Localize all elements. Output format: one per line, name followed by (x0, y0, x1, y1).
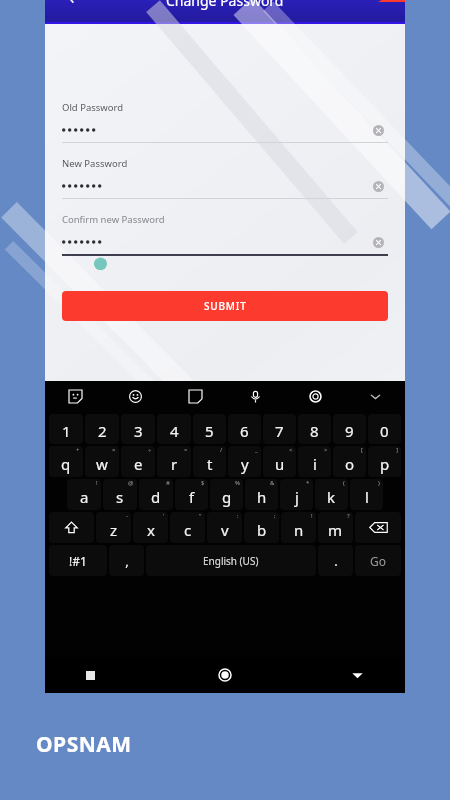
button[interactable]: : (207, 512, 242, 543)
staticText: y (241, 454, 249, 474)
staticText: i (313, 454, 317, 474)
button[interactable]: Home (165, 657, 285, 693)
staticText: ? (347, 512, 350, 520)
button[interactable]: ( (315, 479, 348, 510)
button[interactable]: $ (175, 479, 208, 510)
button[interactable]: ! (281, 512, 316, 543)
button[interactable]: !#1 (49, 545, 107, 576)
staticText: m (328, 520, 343, 540)
button[interactable]: Sticker (63, 384, 87, 408)
button[interactable]: 2 (85, 414, 119, 444)
button[interactable]: . (318, 545, 353, 576)
button[interactable]: + (49, 446, 83, 477)
button[interactable]: / (193, 446, 226, 477)
button[interactable]: New Password (45, 157, 405, 199)
button[interactable]: @ (103, 479, 137, 510)
button[interactable]: 3 (121, 414, 155, 444)
staticText: d (151, 487, 161, 507)
staticText: p (380, 454, 390, 474)
button[interactable]: Confirm new Password (45, 213, 405, 271)
staticText: q (61, 454, 71, 474)
button[interactable]: ! (67, 479, 101, 510)
button[interactable]: Old Password (45, 101, 405, 143)
button[interactable]: ? (318, 512, 353, 543)
button[interactable]: - (96, 512, 131, 543)
staticText: 1 (62, 421, 71, 441)
staticText: 2 (98, 421, 107, 441)
staticText: = (184, 446, 188, 454)
button[interactable]: Collapse keyboard (363, 384, 387, 408)
staticText: OPSNAM (36, 730, 132, 759)
staticText: " (199, 512, 202, 520)
button[interactable]: ' (133, 512, 168, 543)
button[interactable]: # (139, 479, 173, 510)
button[interactable]: " (170, 512, 205, 543)
staticText: ! (96, 479, 98, 487)
button[interactable]: = (157, 446, 191, 477)
staticText: × (112, 446, 116, 454)
button[interactable]: SUBMIT (62, 291, 388, 321)
button[interactable]: Emoji (123, 384, 147, 408)
button[interactable]: 1 (49, 414, 83, 444)
staticText: [ (361, 446, 363, 454)
button[interactable]: Recent apps (45, 657, 165, 693)
button[interactable]: % (210, 479, 243, 510)
button[interactable]: 9 (333, 414, 366, 444)
staticText: g (222, 487, 232, 507)
staticText: - (126, 512, 128, 520)
staticText: u (275, 454, 285, 474)
staticText: SUBMIT (204, 299, 247, 313)
staticText: * (306, 479, 310, 487)
button[interactable]: Settings (303, 384, 327, 408)
button[interactable]: ) (350, 479, 383, 510)
button[interactable]: Backspace (355, 512, 401, 543)
button[interactable]: English (US) (146, 545, 316, 576)
button[interactable]: Clear Confirm new Password (368, 233, 388, 251)
button[interactable]: 5 (193, 414, 226, 444)
button[interactable]: * (280, 479, 313, 510)
staticText: % (235, 479, 240, 487)
staticText: Change Password (166, 0, 284, 10)
button[interactable]: _ (228, 446, 261, 477)
button[interactable]: GIF (183, 384, 207, 408)
staticText: Go (370, 553, 386, 569)
staticText: v (221, 520, 229, 540)
button[interactable]: Voice input (243, 384, 267, 408)
staticText: b (257, 520, 267, 540)
button[interactable]: 7 (263, 414, 296, 444)
staticText: ' (163, 512, 165, 520)
staticText: New Password (62, 157, 128, 170)
staticText: @ (128, 479, 134, 487)
button[interactable]: ] (368, 446, 401, 477)
button[interactable]: > (298, 446, 331, 477)
button[interactable]: 4 (157, 414, 191, 444)
button[interactable]: Clear New Password (368, 177, 388, 195)
staticText: 3 (134, 421, 143, 441)
staticText: : (237, 512, 239, 520)
button[interactable]: [ (333, 446, 366, 477)
button[interactable]: Clear Old Password (368, 121, 388, 139)
button[interactable]: 8 (298, 414, 331, 444)
staticText: + (76, 446, 80, 454)
staticText: ( (343, 479, 345, 487)
button[interactable]: ; (244, 512, 279, 543)
button[interactable]: Hide keyboard (285, 657, 405, 693)
staticText: w (96, 454, 108, 474)
button[interactable]: < (263, 446, 296, 477)
button[interactable]: Go (355, 545, 401, 576)
button[interactable]: , (109, 545, 144, 576)
button[interactable]: Back (53, 0, 89, 8)
button[interactable]: × (85, 446, 119, 477)
staticText: k (327, 487, 336, 507)
staticText: c (184, 520, 192, 540)
staticText: # (166, 479, 170, 487)
button[interactable]: & (245, 479, 278, 510)
button[interactable]: ÷ (121, 446, 155, 477)
button[interactable]: 0 (368, 414, 401, 444)
button[interactable]: 6 (228, 414, 261, 444)
staticText: ; (274, 512, 276, 520)
staticText: e (134, 454, 143, 474)
staticText: x (147, 520, 155, 540)
button[interactable]: Shift (49, 512, 94, 543)
staticText: > (324, 446, 328, 454)
